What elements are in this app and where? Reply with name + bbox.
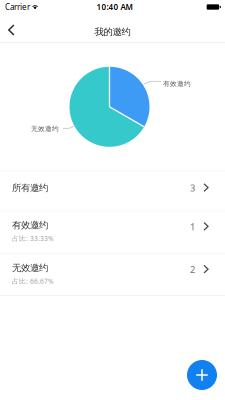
staticText: 占比: 33.33% [12, 234, 54, 243]
button[interactable]: 所有邀约 [0, 172, 225, 211]
staticText: 无效邀约 [31, 125, 59, 133]
staticText: Carrier [5, 2, 30, 12]
staticText: 2 [190, 263, 195, 276]
staticText: 有效邀约 [12, 219, 48, 231]
staticText: 3 [190, 182, 195, 194]
button[interactable]: Back [0, 15, 25, 41]
staticText: 无效邀约 [12, 262, 48, 274]
staticText: 所有邀约 [12, 182, 48, 194]
staticText: 10:40 AM [96, 2, 132, 12]
staticText: 占比: 66.67% [12, 277, 54, 286]
staticText: 有效邀约 [163, 80, 191, 88]
button[interactable]: 有效邀约 [0, 211, 225, 253]
button[interactable]: Add invitation [187, 360, 217, 390]
button[interactable]: 无效邀约 [0, 254, 225, 295]
staticText: 我的邀约 [94, 26, 130, 38]
staticText: 1 [190, 220, 195, 233]
